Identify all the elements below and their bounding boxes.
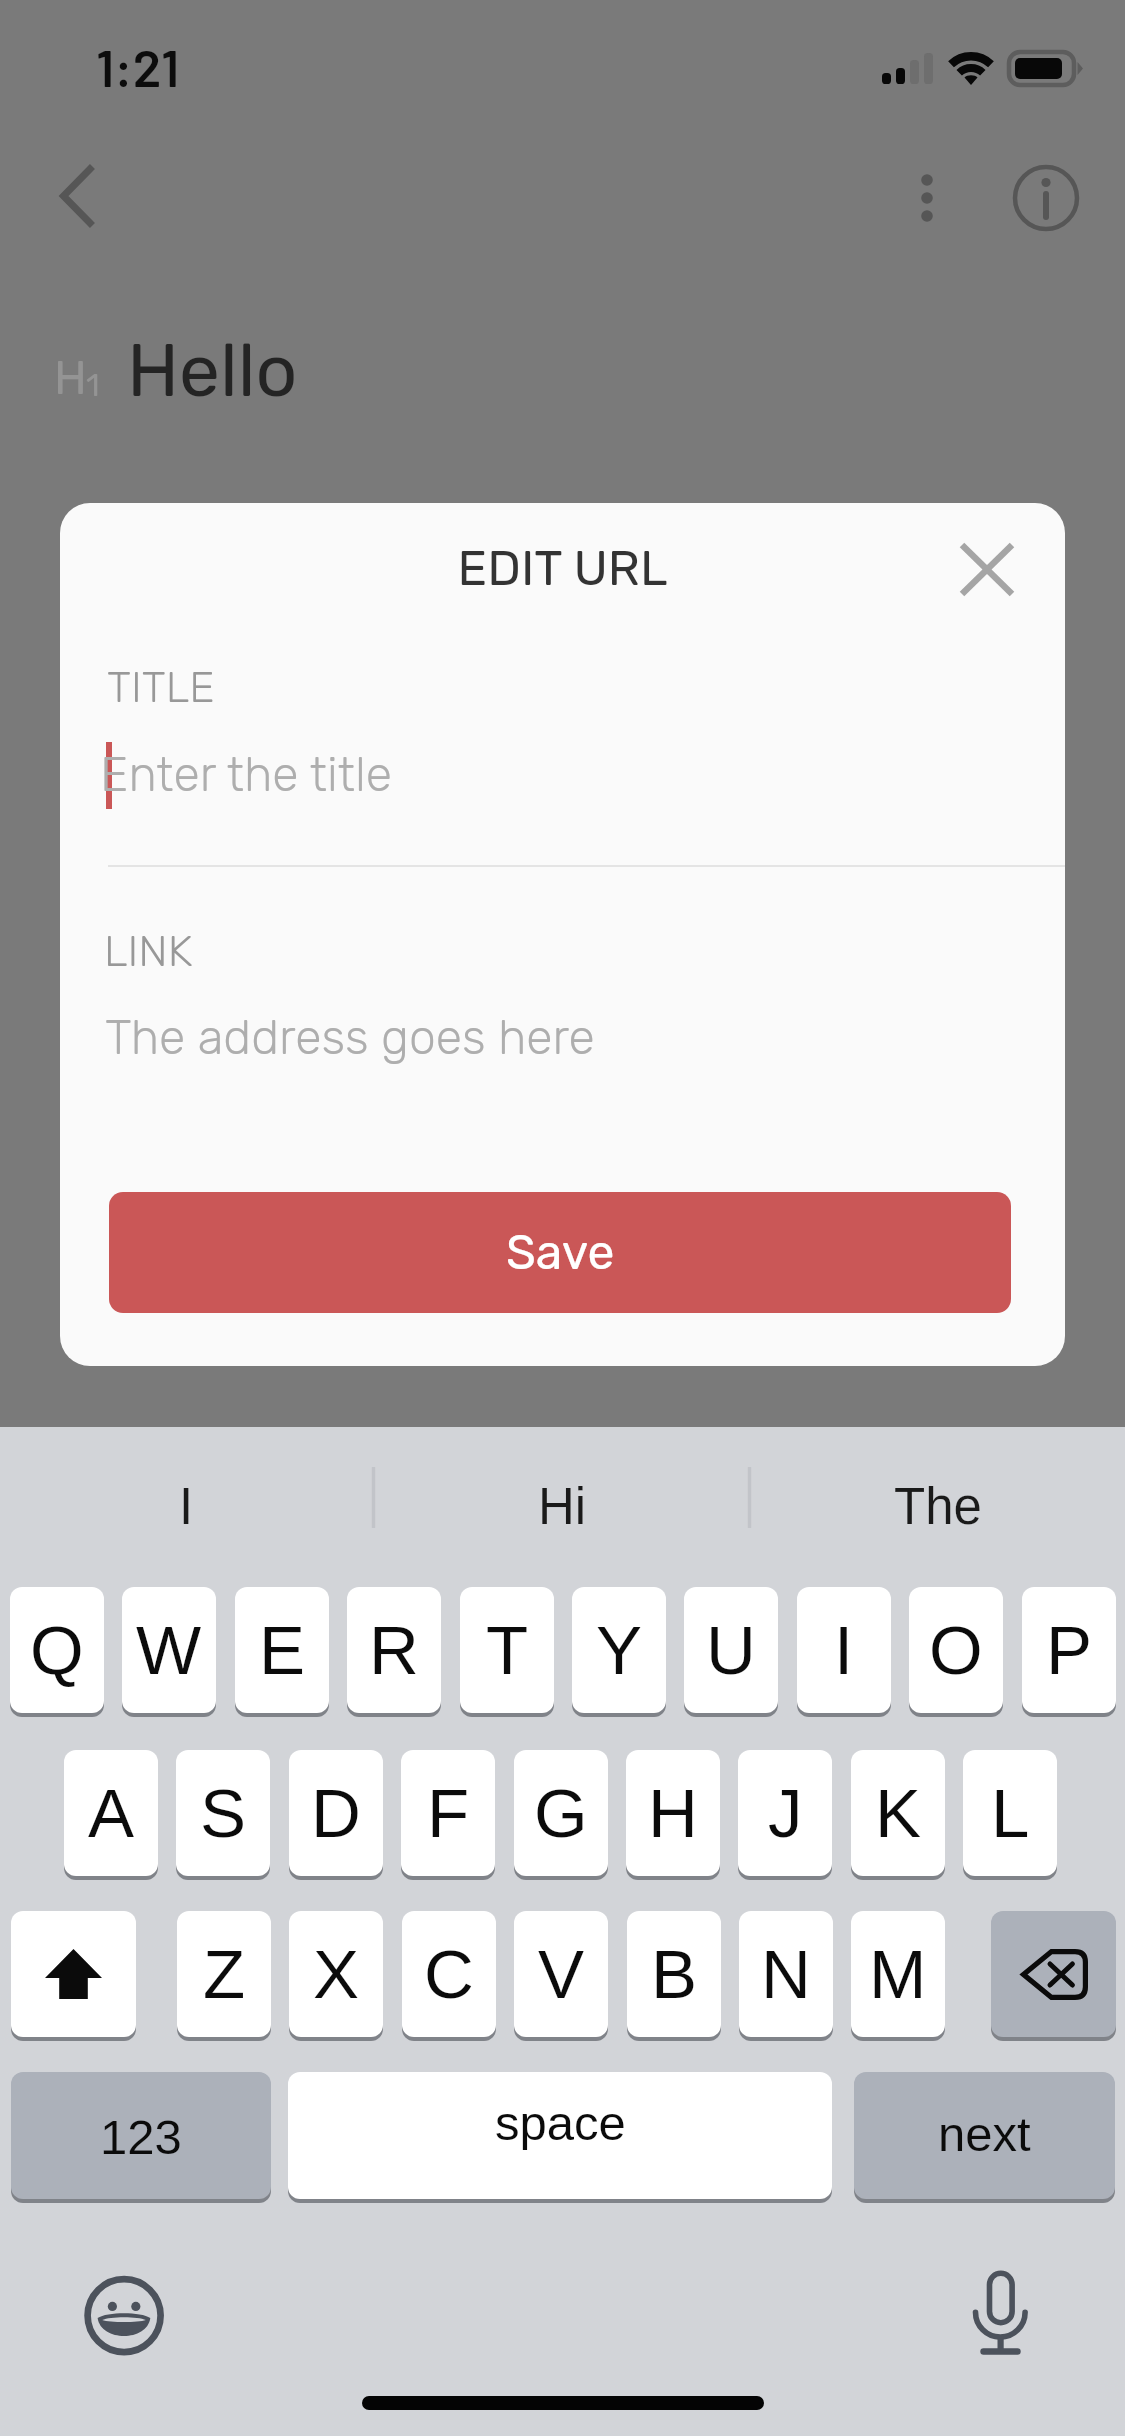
staticText: U xyxy=(706,1612,756,1689)
button[interactable]: P xyxy=(1022,1587,1116,1713)
staticText: The address goes here xyxy=(105,1009,595,1066)
button[interactable]: Back xyxy=(20,138,140,258)
button[interactable]: F xyxy=(401,1750,495,1876)
staticText: Q xyxy=(30,1612,84,1689)
button[interactable]: Hi xyxy=(374,1449,750,1563)
staticText: N xyxy=(761,1936,811,2013)
button[interactable]: G xyxy=(514,1750,608,1876)
button[interactable]: Save xyxy=(109,1192,1011,1313)
button[interactable]: E xyxy=(235,1587,329,1713)
staticText: EDIT URL xyxy=(60,539,1065,597)
staticText: M xyxy=(869,1936,927,2013)
staticText: Save xyxy=(506,1224,615,1281)
staticText: J xyxy=(768,1775,803,1852)
button[interactable]: 123 xyxy=(11,2072,271,2199)
button[interactable]: Shift xyxy=(11,1911,136,2037)
button[interactable]: Backspace xyxy=(991,1911,1116,2037)
button[interactable]: M xyxy=(851,1911,945,2037)
staticText: Hi xyxy=(538,1478,587,1535)
staticText: G xyxy=(534,1775,588,1852)
button[interactable]: B xyxy=(627,1911,721,2037)
staticText: K xyxy=(875,1775,922,1852)
staticText: F xyxy=(427,1775,470,1852)
staticText: I xyxy=(834,1612,854,1689)
button[interactable]: S xyxy=(176,1750,270,1876)
staticText: V xyxy=(538,1936,585,2013)
button[interactable]: Emoji xyxy=(64,2256,184,2376)
button[interactable]: Close xyxy=(937,523,1037,623)
staticText: A xyxy=(88,1775,135,1852)
button[interactable]: T xyxy=(460,1587,554,1713)
button[interactable]: space xyxy=(288,2072,832,2199)
button[interactable]: L xyxy=(963,1750,1057,1876)
staticText: H xyxy=(54,351,87,406)
button[interactable]: U xyxy=(684,1587,778,1713)
staticText: X xyxy=(313,1936,360,2013)
staticText: The xyxy=(894,1478,982,1535)
button[interactable]: Z xyxy=(177,1911,271,2037)
button[interactable]: More options xyxy=(877,148,977,248)
staticText: L xyxy=(991,1775,1030,1852)
button[interactable]: J xyxy=(738,1750,832,1876)
staticText: 1:21 xyxy=(96,35,180,97)
staticText: B xyxy=(651,1936,698,2013)
button[interactable]: I xyxy=(797,1587,891,1713)
button[interactable]: O xyxy=(909,1587,1003,1713)
button[interactable]: Info xyxy=(1001,153,1091,243)
button[interactable]: The xyxy=(750,1449,1125,1563)
staticText: R xyxy=(369,1612,419,1689)
staticText: 123 xyxy=(100,2110,182,2165)
staticText: I xyxy=(179,1478,194,1535)
staticText: E xyxy=(259,1612,306,1689)
button[interactable]: K xyxy=(851,1750,945,1876)
staticText: W xyxy=(136,1612,202,1689)
staticText: 1 xyxy=(86,366,100,404)
staticText: space xyxy=(495,2096,626,2151)
staticText: H xyxy=(648,1775,698,1852)
staticText: Hello xyxy=(127,328,298,415)
staticText: D xyxy=(311,1775,361,1852)
button[interactable]: N xyxy=(739,1911,833,2037)
button[interactable]: R xyxy=(347,1587,441,1713)
staticText: C xyxy=(424,1936,474,2013)
button[interactable]: X xyxy=(289,1911,383,2037)
staticText: LINK xyxy=(104,926,193,977)
staticText: O xyxy=(929,1612,983,1689)
button[interactable]: C xyxy=(402,1911,496,2037)
button[interactable]: W xyxy=(122,1587,216,1713)
staticText: T xyxy=(486,1612,529,1689)
button[interactable]: Q xyxy=(10,1587,104,1713)
button[interactable]: next xyxy=(854,2072,1115,2199)
staticText: TITLE xyxy=(107,662,215,713)
staticText: Z xyxy=(203,1936,246,2013)
button[interactable]: I xyxy=(0,1449,374,1563)
staticText: next xyxy=(938,2107,1031,2162)
staticText: Enter the title xyxy=(100,746,392,803)
staticText: S xyxy=(200,1775,247,1852)
staticText: P xyxy=(1046,1612,1093,1689)
button[interactable]: D xyxy=(289,1750,383,1876)
button[interactable]: Voice input xyxy=(950,2256,1070,2376)
button[interactable]: H xyxy=(626,1750,720,1876)
staticText: Y xyxy=(596,1612,643,1689)
button[interactable]: A xyxy=(64,1750,158,1876)
button[interactable]: V xyxy=(514,1911,608,2037)
button[interactable]: Y xyxy=(572,1587,666,1713)
